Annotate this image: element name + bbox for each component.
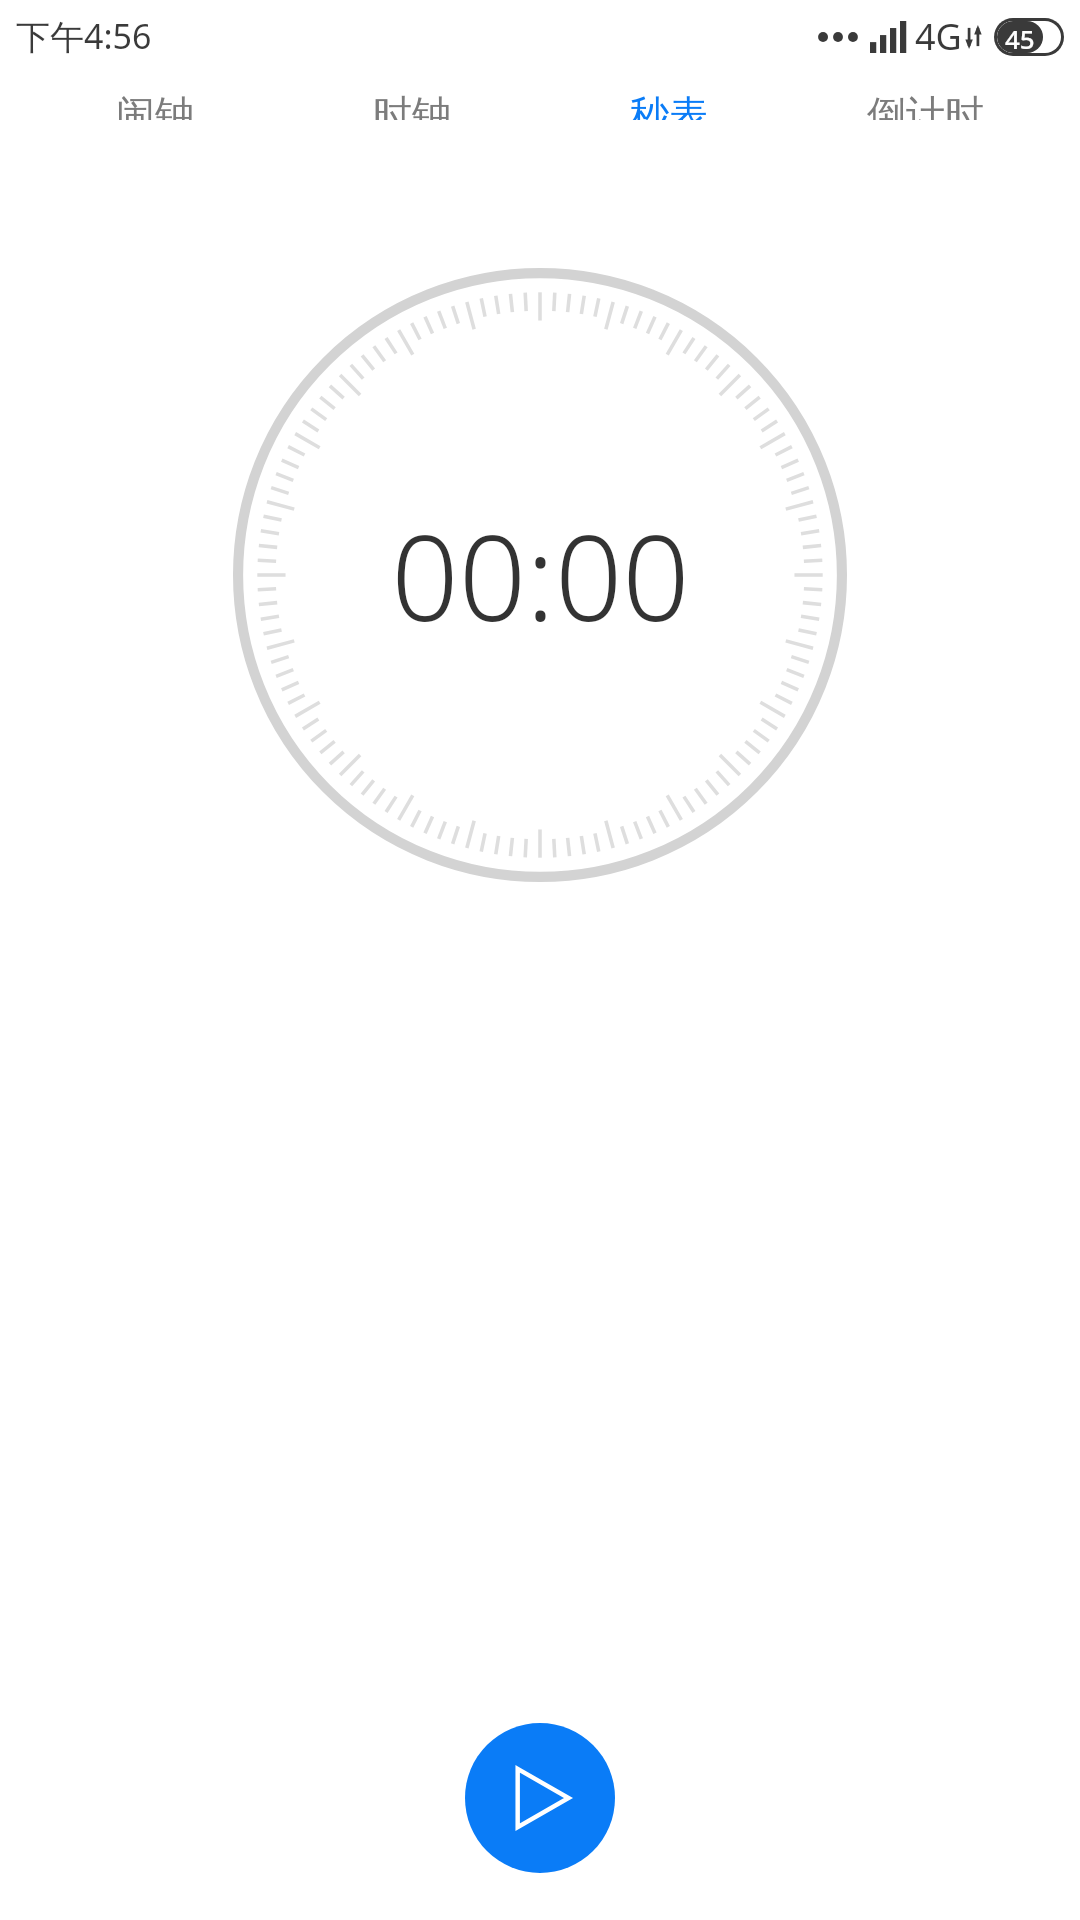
- button[interactable]: 秒表: [540, 72, 797, 120]
- staticText: 倒计时: [867, 90, 984, 120]
- button[interactable]: 闹钟: [26, 72, 283, 120]
- button[interactable]: 时钟: [283, 72, 540, 120]
- staticText: 4G: [915, 12, 962, 61]
- staticText: 45: [1005, 21, 1035, 53]
- staticText: 闹钟: [116, 90, 194, 120]
- staticText: 00:00: [391, 495, 690, 656]
- button[interactable]: 倒计时: [797, 72, 1054, 120]
- button[interactable]: Start stopwatch: [465, 1723, 615, 1873]
- staticText: 秒表: [630, 90, 708, 120]
- staticText: 时钟: [373, 90, 451, 120]
- staticText: 下午4:56: [16, 13, 152, 59]
